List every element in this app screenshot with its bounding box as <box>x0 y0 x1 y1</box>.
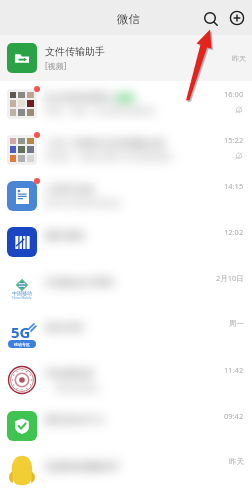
button[interactable]: 文件传输助手 <box>0 35 252 81</box>
staticText: 订阅号消息 <box>45 183 95 196</box>
staticText: 微信安全中心 <box>45 413 105 426</box>
staticText: 昨天 <box>232 54 246 63</box>
staticText: 16:00 <box>224 89 244 99</box>
staticText: 学校通知栏 <box>45 367 95 380</box>
button[interactable]: Search <box>198 6 222 30</box>
button[interactable]: Add <box>225 6 249 30</box>
staticText: 新华社等发来消息会 <box>45 198 122 209</box>
staticText: 2月10日 <box>216 273 244 283</box>
button[interactable]: 订阅号消息 <box>0 173 252 219</box>
staticText: 昨天 <box>229 457 244 466</box>
staticText: 5G <box>11 322 31 342</box>
button[interactable]: 微信安全中心 <box>0 403 252 449</box>
staticText: 11:42 <box>224 365 244 375</box>
staticText: 09:42 <box>224 411 244 421</box>
staticText: 快乐星球的我们 <box>45 91 115 104</box>
staticText: 李老师：请各位家长注意查收通知 <box>45 152 173 163</box>
button[interactable]: QQ邮箱提醒助手 <box>0 449 252 488</box>
button[interactable]: 中国移动 <box>0 265 252 311</box>
staticText: 教务处通知 <box>45 382 99 394</box>
button[interactable]: 三年二班家长交流群聚会群 <box>0 127 252 173</box>
staticText: 文件传输助手 <box>45 45 105 58</box>
staticText: China Mobile <box>12 296 32 300</box>
button[interactable]: 5G <box>0 311 252 357</box>
staticText: 三年二班家长交流群聚会群 <box>45 137 165 150</box>
staticText: 14:15 <box>224 181 244 191</box>
staticText: 周一 <box>229 319 244 328</box>
button[interactable]: 服务通知 <box>0 219 252 265</box>
staticText: 中国移动 <box>12 290 32 296</box>
staticText: 15:22 <box>224 135 244 145</box>
button[interactable]: 学校通知栏 <box>0 357 252 403</box>
staticText: 微信 <box>117 12 140 26</box>
staticText: 阿明：周末一起去爬山吧哈哈 <box>45 106 156 117</box>
button[interactable]: 快乐星球的我们 <box>0 81 252 127</box>
staticText: 服务通知 <box>45 229 85 242</box>
staticText: 12:02 <box>224 227 244 237</box>
staticText: 移动专区 <box>14 342 30 347</box>
staticText: [视频] <box>45 60 67 71</box>
staticText: 中国移动10086 <box>45 275 114 289</box>
staticText: 移动专区 <box>45 321 85 334</box>
staticText: QQ邮箱提醒助手 <box>45 459 121 473</box>
